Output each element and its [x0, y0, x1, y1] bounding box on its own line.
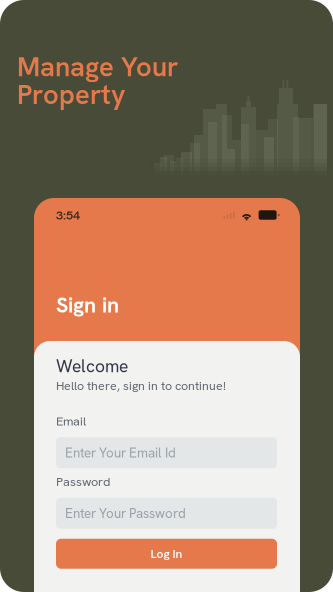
- staticText: Email: [56, 413, 86, 429]
- staticText: Enter Your Password: [65, 505, 186, 522]
- staticText: Sign in: [56, 291, 119, 319]
- staticText: 3:54: [56, 207, 80, 223]
- staticText: Password: [56, 473, 110, 490]
- button[interactable]: Enter Your Password: [56, 498, 277, 529]
- staticText: Enter Your Email Id: [65, 444, 176, 461]
- staticText: Manage Your: [17, 49, 178, 85]
- staticText: Hello there, sign in to continue!: [56, 378, 226, 394]
- staticText: Welcome: [56, 355, 128, 378]
- button[interactable]: Enter Your Email Id: [56, 437, 277, 468]
- staticText: Property: [17, 77, 125, 112]
- button[interactable]: Log In: [56, 539, 277, 569]
- staticText: Log In: [150, 546, 182, 561]
